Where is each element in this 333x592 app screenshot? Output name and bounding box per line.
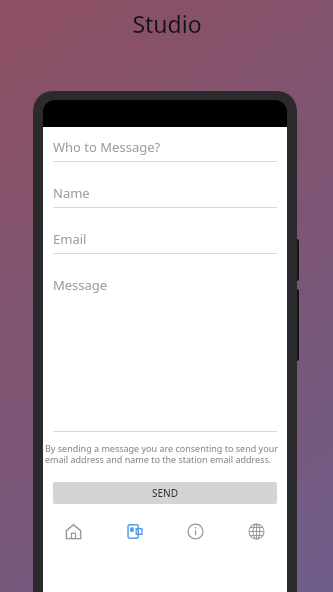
staticText: Studio: [132, 8, 202, 39]
staticText: Who to Message?: [53, 138, 161, 156]
staticText: SEND: [152, 486, 179, 500]
button[interactable]: SEND: [53, 482, 277, 504]
staticText: Name: [53, 184, 90, 202]
button[interactable]: Info: [165, 516, 226, 546]
button[interactable]: Home: [43, 516, 104, 546]
button[interactable]: Email: [53, 230, 277, 254]
button[interactable]: Messages: [104, 516, 165, 546]
button[interactable]: Who to Message?: [53, 138, 277, 162]
staticText: By sending a message you are consenting …: [45, 442, 283, 466]
staticText: Email: [53, 230, 87, 248]
staticText: Message: [53, 276, 108, 294]
button[interactable]: Message: [53, 276, 277, 431]
button[interactable]: Name: [53, 184, 277, 208]
button[interactable]: Web: [226, 516, 287, 546]
